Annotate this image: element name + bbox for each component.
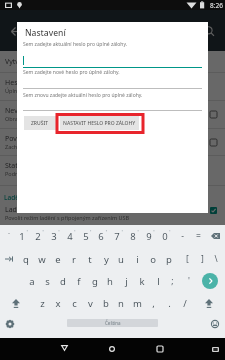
button[interactable]: Input settings <box>2 314 18 334</box>
staticText: b <box>103 297 109 310</box>
staticText: / <box>183 297 187 310</box>
button[interactable]: / <box>177 293 193 313</box>
button[interactable]: Čeština <box>67 319 158 327</box>
button[interactable]: 4 <box>62 226 78 246</box>
button[interactable]: Back <box>4 20 26 42</box>
button[interactable]: 0 <box>157 226 173 246</box>
staticText: 9 <box>146 230 152 243</box>
staticText: Vytvořit zprávu o chybě <box>5 57 82 67</box>
button[interactable]: ZRUŠIT <box>24 116 56 130</box>
button[interactable]: 7 <box>109 226 125 246</box>
button[interactable]: g <box>87 271 103 291</box>
staticText: Obrazovka se při nabíjení nevypne <box>5 115 94 122</box>
button[interactable]: m <box>129 293 145 313</box>
staticText: h <box>107 275 113 288</box>
button[interactable]: q <box>18 249 34 269</box>
button[interactable]: = <box>190 226 206 246</box>
staticText: x <box>55 297 61 310</box>
button[interactable]: p <box>161 249 177 269</box>
button[interactable]: Vytvořit zprávu o chybě <box>0 51 225 73</box>
staticText: 8 <box>130 230 136 243</box>
button[interactable]: 1 <box>14 226 30 246</box>
button[interactable]: 8 <box>125 226 141 246</box>
button[interactable]: Home <box>101 341 123 357</box>
staticText: k <box>139 275 145 288</box>
staticText: ZRUŠIT <box>31 120 49 127</box>
button[interactable]: c <box>66 293 82 313</box>
button[interactable]: . <box>161 293 177 313</box>
button[interactable]: Hide keyboard <box>204 341 225 357</box>
button[interactable]: ' <box>181 271 197 291</box>
button[interactable]: o <box>145 249 161 269</box>
staticText: s <box>45 275 50 288</box>
button[interactable]: b <box>98 293 114 313</box>
button[interactable]: Statistiky procesů <box>0 156 225 186</box>
button[interactable]: i <box>129 249 145 269</box>
button[interactable]: Povolit HCI snoop log Bluetooth <box>0 129 225 156</box>
staticText: g <box>92 275 98 288</box>
button[interactable]: d <box>55 271 71 291</box>
button[interactable]: j <box>118 271 134 291</box>
button[interactable]: NASTAVIT HESLO PRO ZÁLOHY <box>60 116 139 130</box>
button[interactable]: Ladění USB <box>0 200 225 228</box>
button[interactable]: n <box>113 293 129 313</box>
button[interactable]: Tab <box>1 249 17 269</box>
staticText: 2 <box>35 230 41 243</box>
staticText: Čeština <box>105 320 121 326</box>
button[interactable]: Backspace <box>207 226 223 246</box>
button[interactable]: Back <box>53 340 75 356</box>
button[interactable]: t <box>82 249 98 269</box>
staticText: z <box>40 297 45 310</box>
staticText: Úplné zálohy počítače momentálně nejsou … <box>5 87 141 94</box>
staticText: r <box>72 253 76 266</box>
button[interactable]: x <box>50 293 66 313</box>
staticText: f <box>77 275 81 288</box>
button[interactable]: h <box>102 271 118 291</box>
staticText: Nevypínat obrazovku <box>5 106 75 116</box>
button[interactable]: [ <box>179 249 195 269</box>
staticText: ] <box>201 253 204 265</box>
staticText: . <box>168 297 171 310</box>
button[interactable]: , <box>145 293 161 313</box>
button[interactable]: k <box>134 271 150 291</box>
staticText: m <box>133 297 142 310</box>
button[interactable]: 9 <box>141 226 157 246</box>
button[interactable]: z <box>34 293 50 313</box>
button[interactable]: Recent apps <box>149 341 171 357</box>
button[interactable]: ; <box>164 271 180 291</box>
staticText: 1 <box>19 230 25 243</box>
button[interactable]: l <box>150 271 166 291</box>
button[interactable]: \ <box>208 249 224 269</box>
button[interactable]: Shift <box>8 293 24 313</box>
button[interactable]: a <box>24 271 40 291</box>
button[interactable]: Shift <box>201 293 217 313</box>
button[interactable]: - <box>174 226 190 246</box>
button[interactable]: 6 <box>93 226 109 246</box>
staticText: t <box>88 253 92 266</box>
button[interactable]: Nevypínat obrazovku <box>0 101 225 129</box>
button[interactable]: y <box>98 249 114 269</box>
staticText: Sem zadejte nové heslo pro úplné zálohy. <box>23 69 120 76</box>
button[interactable]: Odvolat oprávnění ladění USB <box>0 228 225 252</box>
staticText: Pro vývojáře <box>30 24 82 36</box>
staticText: 3 <box>51 230 57 243</box>
staticText: ; <box>171 275 174 287</box>
button[interactable]: ` <box>1 226 17 246</box>
button[interactable]: Enter <box>202 273 218 289</box>
button[interactable]: e <box>50 249 66 269</box>
staticText: Povolit HCI snoop log Bluetooth <box>5 134 110 144</box>
button[interactable]: w <box>34 249 50 269</box>
button[interactable]: s <box>39 271 55 291</box>
button[interactable]: u <box>113 249 129 269</box>
button[interactable]: Emoji <box>207 314 223 334</box>
button[interactable]: 5 <box>78 226 94 246</box>
button[interactable]: Search <box>198 20 220 42</box>
button[interactable]: Heslo pro zálohy na počítači <box>0 73 225 101</box>
button[interactable]: f <box>71 271 87 291</box>
button[interactable]: ] <box>194 249 210 269</box>
staticText: q <box>23 253 29 266</box>
button[interactable]: 3 <box>46 226 62 246</box>
button[interactable]: r <box>66 249 82 269</box>
button[interactable]: 2 <box>30 226 46 246</box>
button[interactable]: v <box>82 293 98 313</box>
